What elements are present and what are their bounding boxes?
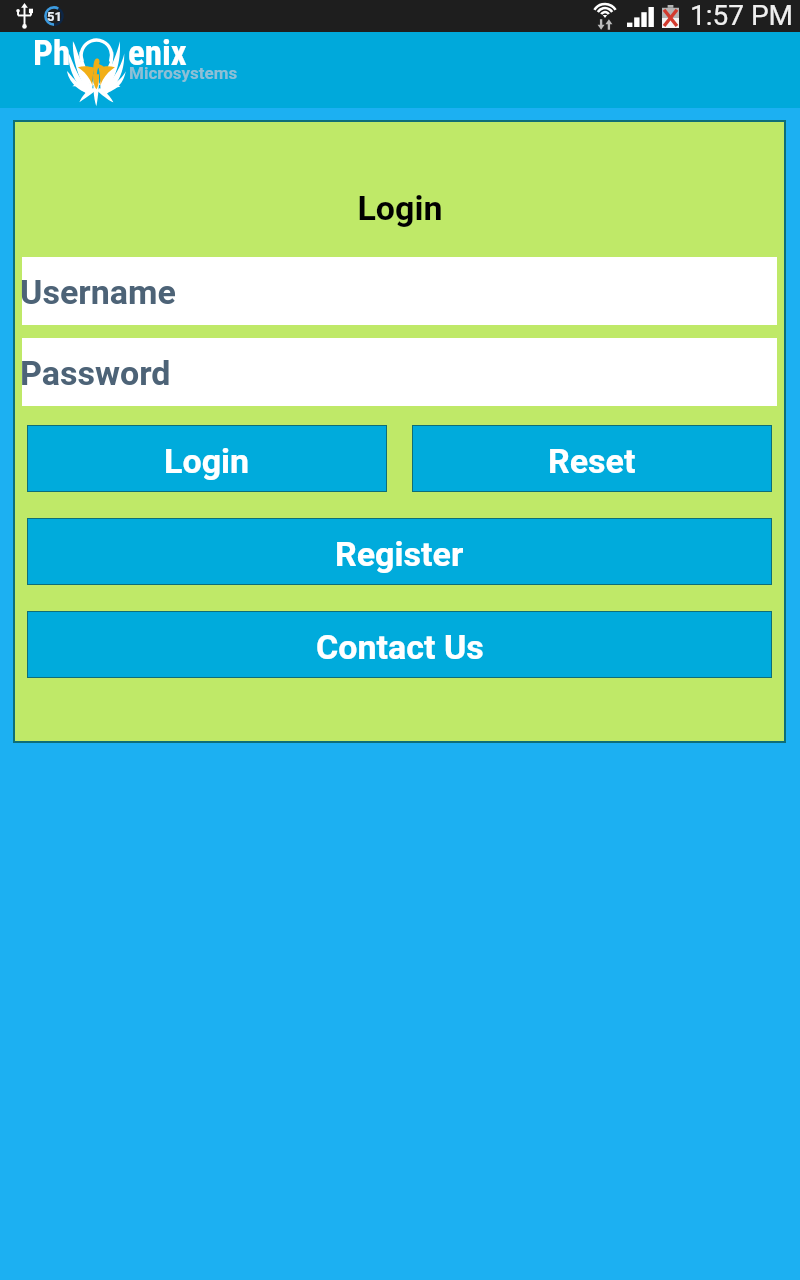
staticText: 1:57 PM [690,0,794,31]
button[interactable]: Login [28,426,386,491]
button[interactable]: Register [28,519,771,584]
staticText: Register [335,534,464,574]
staticText: 51 [47,9,62,24]
button[interactable]: Reset [413,426,771,491]
staticText: Login [357,188,443,228]
button[interactable]: Contact Us [28,612,771,677]
staticText: Password [20,353,171,393]
staticText: Reset [548,441,636,481]
staticText: Ph [33,33,71,74]
button[interactable]: Username [22,257,777,325]
staticText: Username [20,272,176,312]
button[interactable]: Password [22,338,777,406]
staticText: Login [164,441,250,481]
staticText: enix [128,33,187,74]
staticText: Microsystems [129,63,238,83]
staticText: Contact Us [316,627,484,667]
